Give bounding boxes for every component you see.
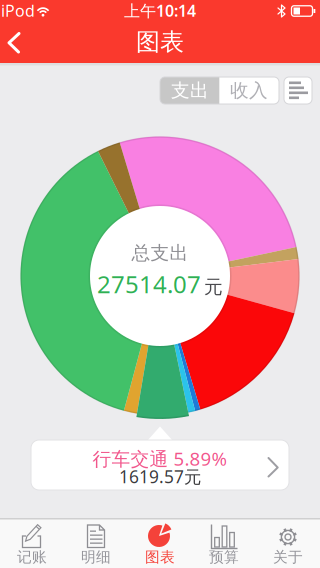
button[interactable]: 支出 bbox=[160, 77, 219, 104]
button[interactable]: 图表 bbox=[128, 519, 192, 568]
button[interactable]: 图例 bbox=[284, 77, 312, 104]
staticText: iPod bbox=[1, 0, 35, 21]
button[interactable]: 行车交通 5.89% bbox=[31, 426, 289, 490]
staticText: 支出 bbox=[171, 79, 209, 102]
button[interactable]: 预算 bbox=[192, 519, 256, 568]
staticText: 预算 bbox=[209, 548, 239, 566]
staticText: 行车交通 5.89% bbox=[92, 446, 227, 471]
staticText: 元 bbox=[204, 276, 223, 298]
button[interactable]: 明细 bbox=[64, 519, 128, 568]
staticText: 收入 bbox=[230, 79, 268, 102]
staticText: 总支出 bbox=[131, 241, 188, 264]
staticText: 记账 bbox=[17, 548, 47, 566]
staticText: 1619.57元 bbox=[119, 465, 201, 488]
staticText: 图表 bbox=[145, 548, 175, 566]
button[interactable]: 记账 bbox=[0, 519, 64, 568]
button[interactable]: 收入 bbox=[219, 77, 279, 104]
staticText: 明细 bbox=[81, 548, 111, 566]
staticText: 上午10:14 bbox=[124, 0, 196, 21]
staticText: 图表 bbox=[136, 27, 184, 57]
staticText: 27514.07 bbox=[97, 268, 201, 300]
button[interactable]: 返回 bbox=[0, 23, 34, 62]
staticText: 关于 bbox=[273, 548, 303, 566]
button[interactable]: 关于 bbox=[256, 519, 320, 568]
